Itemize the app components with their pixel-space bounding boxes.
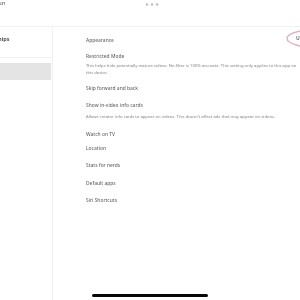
staticText: Location <box>86 145 107 152</box>
button[interactable]: Watch on TV <box>52 126 300 142</box>
staticText: Siri Shortcuts <box>86 197 118 204</box>
button[interactable]: Appearance <box>52 32 300 48</box>
staticText: Default apps <box>86 180 116 187</box>
staticText: hips <box>0 35 10 43</box>
staticText: Show in-video info cards <box>86 102 143 109</box>
button[interactable]: More options <box>142 0 162 10</box>
button[interactable]: hips <box>0 33 52 47</box>
staticText: This helps hide potentially mature video… <box>86 63 297 76</box>
button[interactable]: Default apps <box>52 175 300 191</box>
staticText: Restricted Mode <box>86 53 125 60</box>
staticText: un <box>0 0 6 7</box>
button[interactable]: Stats for nerds <box>52 157 300 173</box>
button[interactable]: Skip forward and back <box>52 80 300 96</box>
staticText: Upl <box>296 35 300 42</box>
button[interactable]: Restricted Mode <box>52 48 300 82</box>
staticText: Skip forward and back <box>86 85 139 92</box>
staticText: Stats for nerds <box>86 162 121 169</box>
button[interactable]: Location <box>52 140 300 156</box>
button[interactable]: Show in-video info cards <box>52 97 300 124</box>
button[interactable]: Siri Shortcuts <box>52 192 300 208</box>
staticText: Watch on TV <box>86 131 115 138</box>
staticText: Appearance <box>86 37 114 44</box>
staticText: Allows creator info cards to appear on v… <box>86 114 297 120</box>
